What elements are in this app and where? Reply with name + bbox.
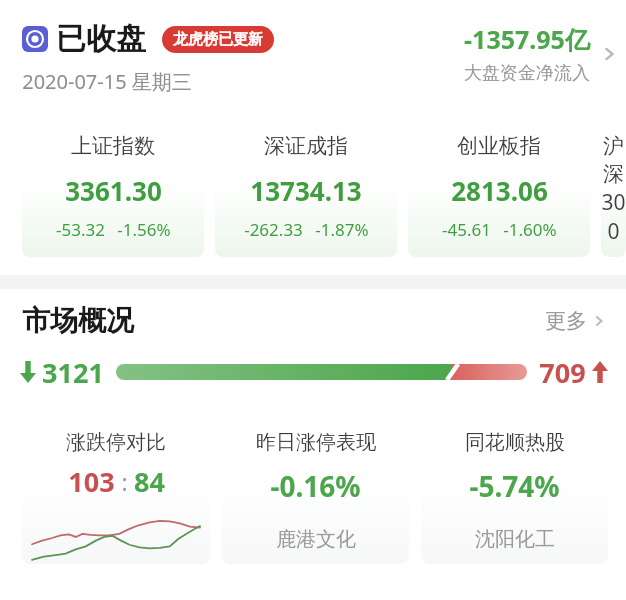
staticText: 创业板指: [457, 133, 541, 159]
staticText: -45.61: [442, 218, 491, 241]
staticText: 大盘资金净流入: [464, 62, 590, 85]
button[interactable]: -1357.95亿: [464, 22, 620, 85]
staticText: 更多: [545, 308, 587, 334]
staticText: 3361.30: [65, 173, 162, 208]
staticText: 涨跌停对比: [66, 430, 166, 455]
staticText: 沪深300: [601, 133, 626, 246]
button[interactable]: 更多: [545, 308, 608, 334]
other: More capital flow: [598, 43, 620, 65]
staticText: 昨日涨停表现: [256, 430, 376, 455]
staticText: 103: [68, 463, 115, 500]
staticText: -5.74%: [469, 467, 560, 505]
staticText: 上证指数: [71, 133, 155, 159]
staticText: 沈阳化工: [475, 527, 555, 552]
staticText: 3121: [42, 354, 104, 390]
staticText: 已收盘: [56, 20, 146, 58]
other: Market status: [22, 26, 48, 52]
button[interactable]: [116, 364, 527, 380]
staticText: -1.56%: [117, 218, 171, 241]
staticText: 2020-07-15 星期三: [22, 68, 192, 95]
staticText: -1.60%: [503, 218, 557, 241]
staticText: 2813.06: [451, 173, 548, 208]
staticText: 84: [134, 463, 165, 500]
staticText: :: [121, 466, 128, 497]
button[interactable]: 上证指数: [22, 105, 204, 257]
staticText: 市场概况: [22, 303, 134, 338]
staticText: 深证成指: [264, 133, 348, 159]
staticText: -53.32: [56, 218, 105, 241]
staticText: 13734.13: [250, 173, 362, 208]
staticText: -1357.95亿: [464, 22, 590, 56]
button[interactable]: 沪深300: [601, 105, 626, 257]
button[interactable]: 涨跌停对比: [22, 404, 210, 564]
button[interactable]: 同花顺热股: [421, 404, 608, 564]
staticText: 龙虎榜已更新: [173, 30, 263, 49]
button[interactable]: 创业板指: [408, 105, 590, 257]
button[interactable]: 深证成指: [215, 105, 397, 257]
staticText: 同花顺热股: [465, 430, 565, 455]
staticText: -1.87%: [315, 218, 369, 241]
staticText: -262.33: [244, 218, 303, 241]
staticText: 鹿港文化: [276, 527, 356, 552]
button[interactable]: 昨日涨停表现: [222, 404, 409, 564]
staticText: -0.16%: [270, 467, 361, 505]
staticText: 709: [539, 354, 586, 390]
button[interactable]: 龙虎榜已更新: [162, 26, 274, 53]
